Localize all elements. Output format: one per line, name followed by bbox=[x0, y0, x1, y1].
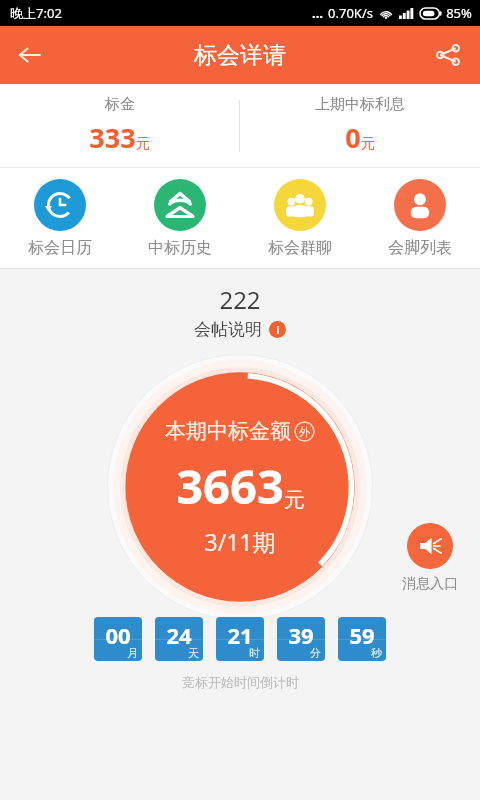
staticText: 85% bbox=[446, 4, 472, 22]
button[interactable]: 会帖说明 bbox=[194, 319, 286, 340]
staticText: 天 bbox=[188, 646, 199, 660]
staticText: 竞标开始时间倒计时 bbox=[182, 674, 299, 690]
button[interactable]: Back bbox=[4, 29, 56, 81]
staticText: 中标历史 bbox=[148, 238, 212, 258]
button[interactable]: 消息入口 bbox=[402, 523, 458, 593]
staticText: 元 bbox=[136, 135, 150, 153]
staticText: 时 bbox=[249, 646, 260, 660]
staticText: i bbox=[276, 322, 280, 337]
staticText: 59 bbox=[349, 620, 375, 650]
staticText: 0.70K/s bbox=[328, 4, 373, 22]
staticText: 3/11期 bbox=[204, 526, 276, 557]
button[interactable]: 本期中标金额 bbox=[107, 354, 373, 620]
button[interactable]: 中标历史 bbox=[120, 168, 240, 268]
staticText: 上期中标利息 bbox=[315, 95, 405, 114]
staticText: 标金 bbox=[105, 95, 135, 114]
staticText: 会脚列表 bbox=[388, 238, 452, 258]
button[interactable]: 上期中标利息 bbox=[240, 84, 480, 167]
staticText: 分 bbox=[310, 646, 321, 660]
staticText: 晚上7:02 bbox=[10, 4, 62, 22]
staticText: 21 bbox=[227, 620, 253, 650]
staticText: 标会日历 bbox=[28, 238, 92, 258]
button[interactable]: 39 bbox=[277, 617, 325, 661]
staticText: 标会详请 bbox=[194, 41, 286, 70]
button[interactable]: 标会日历 bbox=[0, 168, 120, 268]
staticText: 元 bbox=[361, 135, 375, 153]
button[interactable]: Share bbox=[422, 29, 474, 81]
staticText: 会帖说明 bbox=[194, 319, 262, 340]
staticText: 元 bbox=[284, 487, 305, 513]
staticText: 333 bbox=[89, 119, 136, 156]
staticText: 3663 bbox=[176, 454, 284, 518]
staticText: 消息入口 bbox=[402, 575, 458, 593]
button[interactable]: 00 bbox=[94, 617, 142, 661]
button[interactable]: 59 bbox=[338, 617, 386, 661]
staticText: 00 bbox=[105, 620, 131, 650]
staticText: 月 bbox=[127, 646, 138, 660]
staticText: ... bbox=[312, 4, 323, 22]
button[interactable]: 24 bbox=[155, 617, 203, 661]
staticText: 24 bbox=[166, 620, 192, 650]
staticText: 外 bbox=[299, 425, 310, 439]
staticText: 222 bbox=[219, 283, 261, 316]
staticText: 39 bbox=[288, 620, 314, 650]
button[interactable]: 21 bbox=[216, 617, 264, 661]
staticText: 0 bbox=[345, 119, 361, 156]
staticText: 本期中标金额 bbox=[165, 418, 291, 444]
staticText: 标会群聊 bbox=[268, 238, 332, 258]
button[interactable]: 标会群聊 bbox=[240, 168, 360, 268]
staticText: 秒 bbox=[371, 646, 382, 660]
button[interactable]: 标金 bbox=[0, 84, 239, 167]
button[interactable]: 会脚列表 bbox=[360, 168, 480, 268]
